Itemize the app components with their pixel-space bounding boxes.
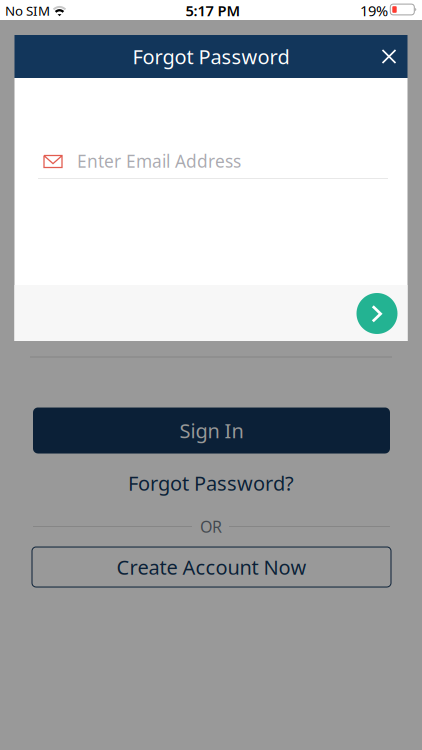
staticText: 5:17 PM: [185, 1, 240, 20]
button[interactable]: Forgot Password?: [128, 470, 294, 496]
staticText: Forgot Password?: [128, 470, 294, 496]
staticText: Forgot Password: [132, 43, 289, 70]
button[interactable]: Submit: [356, 293, 397, 334]
button[interactable]: Create Account Now: [32, 547, 391, 587]
button[interactable]: Close: [374, 41, 404, 71]
staticText: OR: [200, 516, 222, 537]
staticText: 19%: [360, 1, 388, 20]
staticText: Create Account Now: [116, 554, 306, 580]
button[interactable]: Sign In: [33, 407, 390, 453]
staticText: Sign In: [179, 417, 243, 444]
staticText: Enter Email Address: [77, 149, 241, 172]
staticText: No SIM: [5, 2, 50, 19]
